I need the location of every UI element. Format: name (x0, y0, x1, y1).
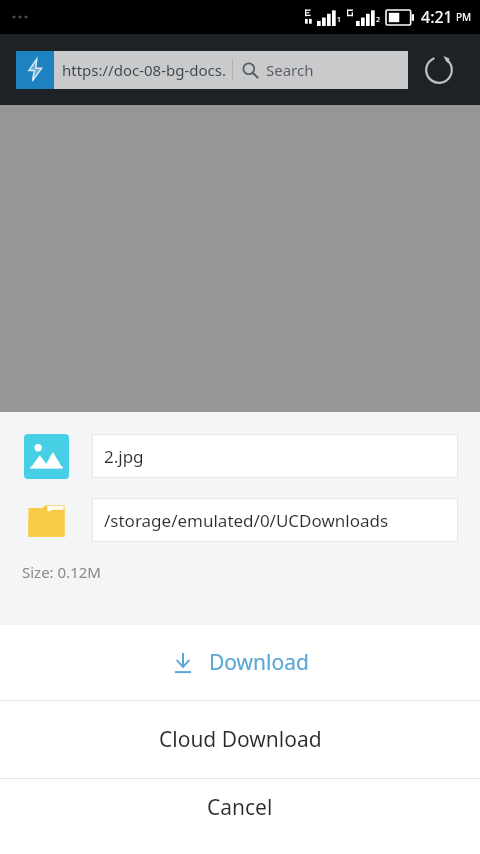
button[interactable]: Reload (408, 34, 470, 105)
staticText: Search (266, 60, 314, 80)
staticText: 4:21 (421, 6, 453, 28)
staticText: https://doc-08-bg-docs. (62, 60, 226, 80)
button[interactable]: Speed mode (16, 51, 408, 89)
staticText: Cloud Download (159, 725, 322, 754)
button[interactable]: Choose folder (22, 496, 70, 544)
other: Speed mode (16, 51, 54, 89)
button[interactable]: 2.jpg (92, 434, 458, 478)
staticText: 1 (337, 15, 342, 25)
button[interactable]: Download (0, 625, 480, 700)
staticText: Cancel (207, 793, 273, 822)
button[interactable]: Image file (22, 432, 70, 480)
staticText: Download (209, 648, 309, 677)
staticText: 2 (376, 15, 381, 25)
staticText: Size: 0.12M (22, 562, 101, 582)
staticText: PM (456, 10, 472, 24)
button[interactable]: Cancel (0, 779, 480, 854)
button[interactable]: /storage/emulated/0/UCDownloads (92, 498, 458, 542)
staticText: /storage/emulated/0/UCDownloads (104, 509, 389, 532)
button[interactable]: Cloud Download (0, 701, 480, 778)
staticText: 2.jpg (104, 445, 144, 468)
